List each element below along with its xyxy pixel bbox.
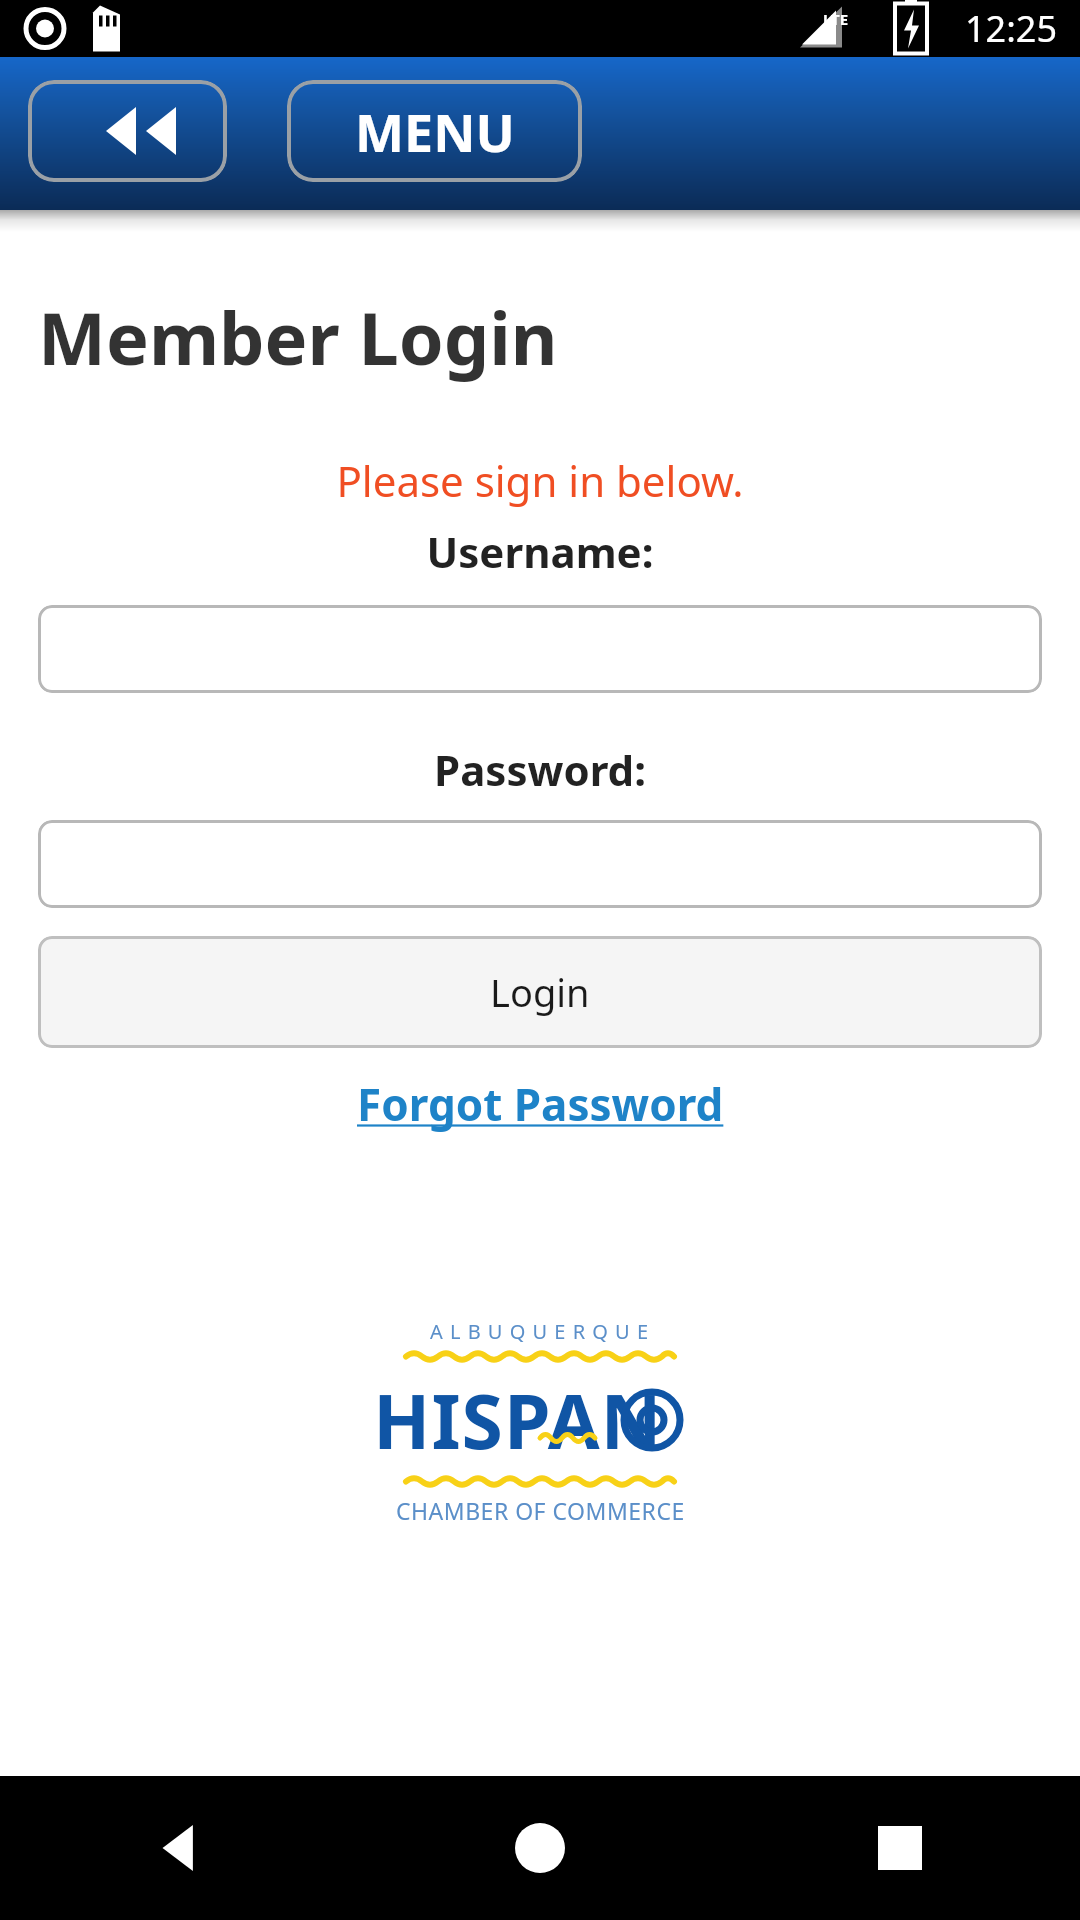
staticText: MENU (355, 96, 515, 167)
staticText: HISPAN (373, 1369, 663, 1471)
staticText: Please sign in below. (0, 452, 1080, 509)
staticText: LTE (823, 9, 849, 29)
staticText: Forgot Password (357, 1074, 724, 1134)
button[interactable]: Recent apps (720, 1776, 1080, 1920)
staticText: Username: (0, 523, 1080, 580)
staticText: A L B U Q U E R Q U E (430, 1318, 650, 1345)
button[interactable]: Back (0, 1776, 360, 1920)
staticText: CHAMBER OF COMMERCE (396, 1495, 685, 1526)
button[interactable]: MENU (287, 80, 582, 182)
button[interactable]: Home (360, 1776, 720, 1920)
staticText: Member Login (38, 288, 558, 386)
staticText: Password: (0, 741, 1080, 798)
button[interactable] (38, 605, 1042, 693)
button[interactable]: Back (28, 80, 227, 182)
button[interactable] (38, 820, 1042, 908)
button[interactable]: Forgot Password (347, 1070, 734, 1138)
staticText: Login (490, 966, 590, 1018)
staticText: 12:25 (965, 4, 1058, 53)
button[interactable]: Login (38, 936, 1042, 1048)
